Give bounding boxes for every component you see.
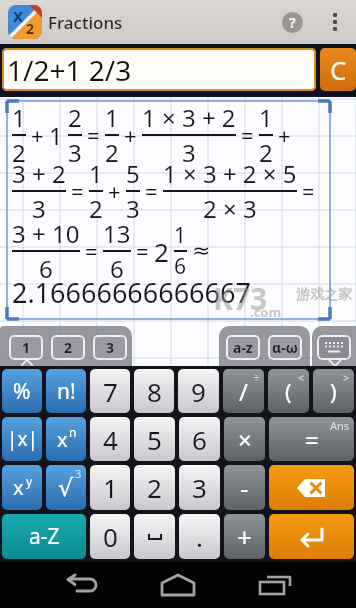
button[interactable]: [157, 570, 199, 600]
button[interactable]: a-Z: [2, 514, 86, 559]
button[interactable]: 6: [179, 417, 220, 461]
button[interactable]: 3: [179, 465, 220, 510]
staticText: +: [108, 176, 121, 206]
staticText: 1: [22, 338, 31, 357]
staticText: /: [239, 375, 248, 408]
button[interactable]: 1/2+1 2/3: [2, 48, 316, 91]
button[interactable]: [269, 514, 354, 559]
staticText: 2: [68, 101, 82, 134]
staticText: 游戏之家: [296, 286, 352, 304]
staticText: <: [298, 370, 305, 385]
staticText: 3 + 2: [12, 157, 66, 190]
staticText: 3: [182, 136, 196, 169]
staticText: 6: [174, 252, 187, 281]
staticText: X: [13, 6, 24, 26]
staticText: 6: [192, 422, 207, 457]
staticText: 3: [126, 192, 140, 225]
staticText: 5: [126, 157, 140, 190]
button[interactable]: ?: [282, 12, 303, 33]
staticText: 1: [12, 101, 26, 134]
staticText: =: [87, 120, 100, 150]
button[interactable]: [317, 335, 351, 360]
staticText: 6: [110, 252, 124, 285]
button[interactable]: %: [2, 369, 42, 413]
staticText: ?: [289, 13, 296, 32]
staticText: =: [305, 423, 319, 456]
button[interactable]: ×: [224, 417, 265, 461]
staticText: =: [241, 120, 254, 150]
staticText: ÷: [253, 370, 260, 385]
staticText: ≈: [192, 238, 211, 264]
button[interactable]: 4: [90, 417, 130, 461]
staticText: 3: [32, 192, 46, 225]
button[interactable]: √: [46, 465, 86, 510]
staticText: >: [343, 370, 350, 385]
button[interactable]: [269, 465, 354, 510]
button[interactable]: -: [224, 465, 265, 510]
button[interactable]: 5: [134, 417, 175, 461]
staticText: Fractions: [48, 11, 123, 34]
button[interactable]: (: [268, 369, 309, 413]
staticText: 1: [174, 221, 187, 250]
button[interactable]: 2: [51, 335, 85, 360]
staticText: 2 × 3: [203, 192, 257, 225]
staticText: 1: [103, 470, 118, 505]
staticText: 5: [147, 422, 162, 457]
staticText: 2: [89, 192, 103, 225]
staticText: 3: [75, 466, 82, 481]
button[interactable]: 2: [134, 465, 175, 510]
staticText: %: [13, 377, 31, 406]
staticText: -: [240, 470, 249, 505]
button[interactable]: .: [179, 514, 220, 559]
staticText: =: [85, 236, 98, 266]
staticText: 1: [259, 101, 273, 134]
staticText: 2: [105, 136, 119, 169]
staticText: 1/2+1 2/3: [7, 51, 132, 89]
button[interactable]: X: [8, 5, 42, 39]
button[interactable]: |x|: [2, 417, 42, 461]
button[interactable]: 8: [134, 369, 174, 413]
staticText: 1 × 3 + 2: [142, 101, 236, 134]
staticText: =: [302, 176, 315, 206]
staticText: 2: [259, 136, 273, 169]
button[interactable]: [134, 514, 175, 559]
staticText: +: [31, 120, 44, 150]
staticText: x: [57, 426, 68, 453]
button[interactable]: x: [2, 465, 42, 510]
staticText: x: [13, 474, 24, 501]
button[interactable]: n!: [46, 369, 86, 413]
button[interactable]: 0: [90, 514, 130, 559]
button[interactable]: 3: [93, 335, 127, 360]
button[interactable]: +: [224, 514, 265, 559]
button[interactable]: [256, 570, 294, 600]
staticText: a-z: [233, 338, 253, 357]
button[interactable]: C: [320, 48, 356, 91]
staticText: Ans: [330, 418, 350, 433]
staticText: 0: [103, 519, 118, 554]
button[interactable]: ): [313, 369, 354, 413]
staticText: ): [330, 376, 337, 406]
staticText: 9: [191, 374, 206, 409]
button[interactable]: x: [46, 417, 86, 461]
button[interactable]: /: [223, 369, 264, 413]
button[interactable]: [333, 13, 337, 31]
staticText: n: [69, 424, 77, 440]
staticText: |x|: [7, 426, 38, 452]
staticText: =: [136, 236, 149, 266]
staticText: n!: [57, 377, 76, 406]
staticText: ×: [238, 423, 252, 456]
button[interactable]: =: [269, 417, 354, 461]
button[interactable]: α-ω: [268, 335, 302, 360]
button[interactable]: 9: [178, 369, 219, 413]
button[interactable]: 1: [90, 465, 130, 510]
staticText: +: [124, 120, 137, 150]
staticText: 4: [103, 422, 118, 457]
staticText: α-ω: [272, 338, 298, 357]
button[interactable]: [62, 570, 100, 600]
staticText: +: [237, 519, 252, 554]
staticText: 3: [106, 338, 115, 357]
button[interactable]: 7: [90, 369, 130, 413]
button[interactable]: 1: [9, 335, 43, 360]
staticText: 2.16666666666667: [12, 274, 251, 311]
button[interactable]: a-z: [226, 335, 260, 360]
